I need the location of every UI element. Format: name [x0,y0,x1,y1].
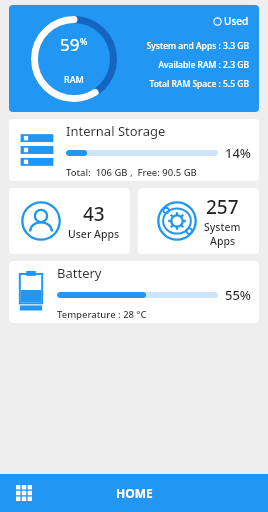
staticText: 257 [206,194,239,220]
staticText: System [204,220,241,234]
other: System Apps [156,200,198,242]
button[interactable]: HOME [79,474,189,512]
staticText: Internal Storage [66,122,166,140]
staticText: 59 [60,33,80,56]
button[interactable]: Battery [9,261,259,323]
other: User Apps [20,200,62,242]
staticText: Available RAM : 2.3 GB [158,59,249,71]
staticText: User Apps [68,227,120,241]
other: Battery [17,271,45,313]
button[interactable]: 59 [9,5,259,112]
staticText: Apps [210,234,236,248]
staticText: % [80,35,88,47]
staticText: HOME [116,485,153,501]
staticText: Total: 106 GB , Free: 90.5 GB [66,166,197,179]
staticText: 55% [225,286,251,304]
button[interactable]: System Apps [138,188,259,254]
button[interactable]: User Apps [9,188,130,254]
button[interactable]: Used [213,14,249,28]
staticText: Battery [57,264,102,282]
staticText: Used [224,14,249,28]
staticText: RAM [64,73,84,85]
staticText: 14% [225,144,251,162]
staticText: System and Apps : 3.3 GB [146,40,249,52]
staticText: Total RAM Space : 5.5 GB [149,78,249,90]
staticText: Temperature : 28 °C [57,308,147,321]
staticText: 43 [83,201,105,227]
button[interactable]: All apps [0,474,48,512]
other: Storage [17,132,57,168]
button[interactable]: Storage [9,119,259,181]
